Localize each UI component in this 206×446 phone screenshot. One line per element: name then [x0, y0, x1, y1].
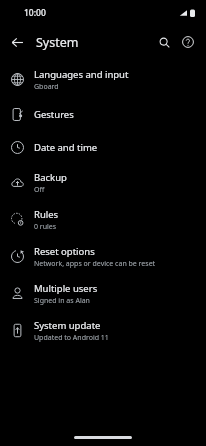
button[interactable]: Rules [0, 201, 206, 238]
staticText: Updated to Android 11 [34, 333, 109, 343]
staticText: Network, apps or device can be reset [34, 259, 156, 269]
staticText: System [36, 34, 79, 51]
button[interactable]: Reset options [0, 238, 206, 275]
button[interactable]: Back [5, 30, 29, 54]
staticText: 10:00 [24, 7, 46, 19]
button[interactable]: Help [176, 30, 200, 54]
button[interactable]: Gestures [0, 98, 206, 131]
staticText: Multiple users [34, 282, 98, 295]
button[interactable]: Date and time [0, 131, 206, 164]
staticText: Backup [34, 171, 67, 184]
staticText: Signed in as Alan [34, 296, 90, 306]
button[interactable]: Languages and input [0, 61, 206, 98]
button[interactable]: Multiple users [0, 275, 206, 312]
staticText: Off [34, 185, 45, 195]
button[interactable]: Search [152, 30, 176, 54]
staticText: Gestures [34, 108, 74, 121]
button[interactable]: Backup [0, 164, 206, 201]
staticText: Rules [34, 208, 59, 221]
staticText: Reset options [34, 245, 95, 258]
staticText: Languages and input [34, 68, 129, 81]
staticText: System update [34, 319, 101, 332]
staticText: 0 rules [34, 222, 57, 232]
staticText: Date and time [34, 141, 98, 154]
button[interactable]: System update [0, 312, 206, 349]
staticText: Gboard [34, 82, 59, 92]
